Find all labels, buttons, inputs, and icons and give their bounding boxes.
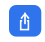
button[interactable]: Share: [0, 0, 45, 42]
